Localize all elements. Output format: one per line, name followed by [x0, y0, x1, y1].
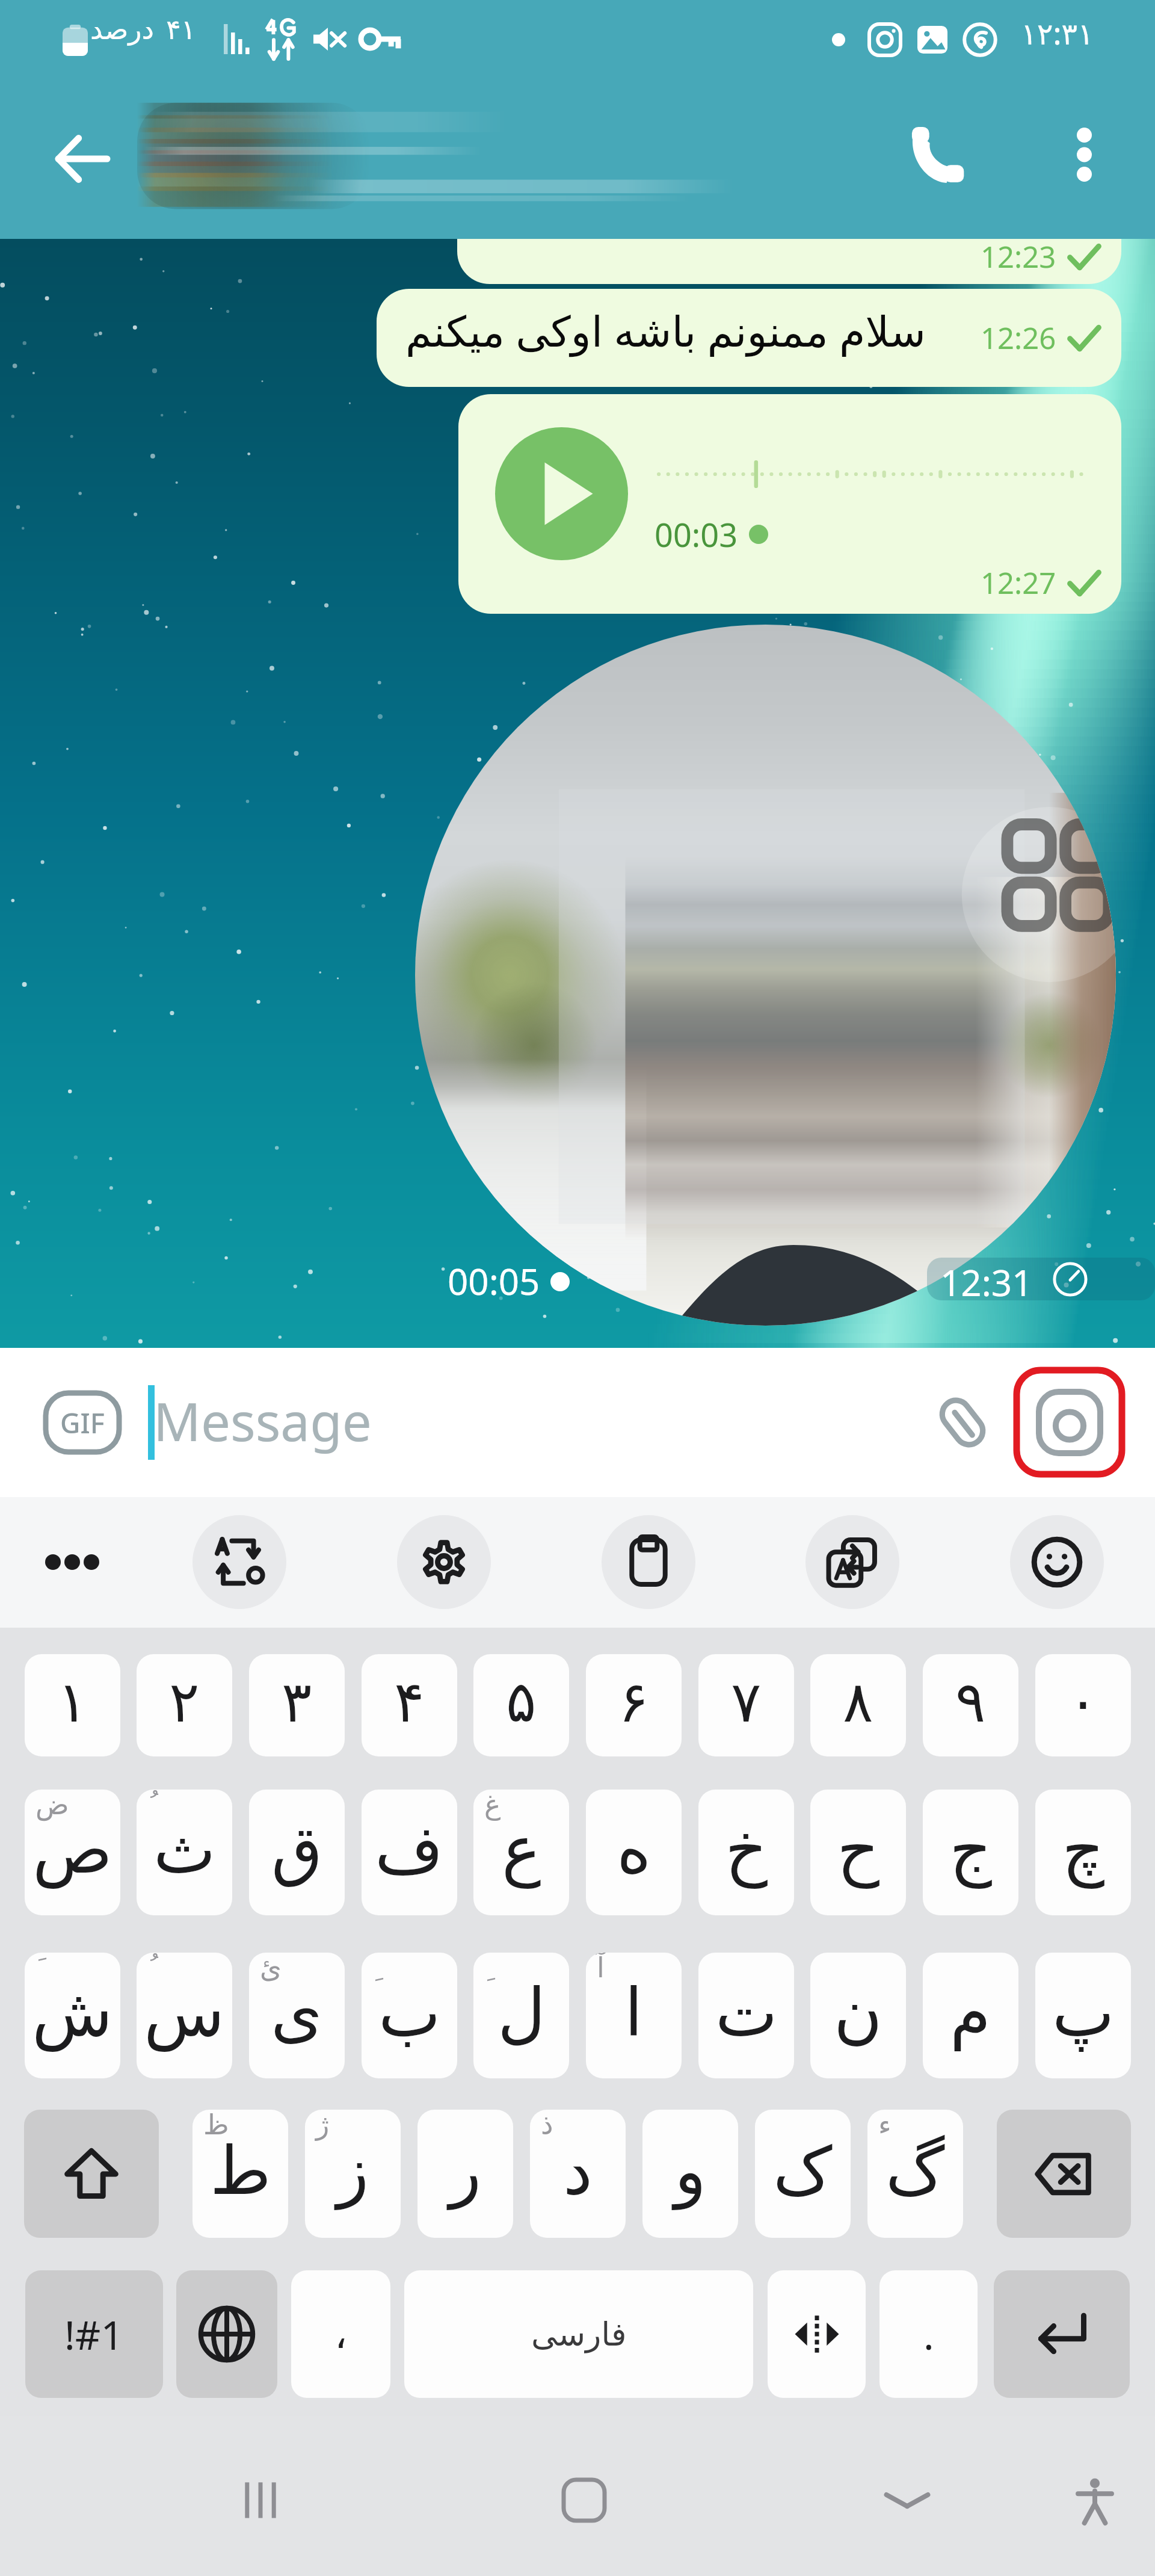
button[interactable]: ء — [867, 2110, 963, 2238]
staticText: سلام ممنونم باشه اوکی میکنم — [405, 301, 926, 359]
button[interactable]: ِ — [362, 1953, 457, 2078]
staticText: ۷ — [731, 1669, 762, 1735]
button[interactable]: Keyboard tool 3 — [602, 1515, 695, 1609]
staticText: ۱ — [57, 1669, 88, 1735]
button[interactable]: Back — [36, 114, 126, 204]
button[interactable]: 12:23 — [457, 181, 1121, 284]
button[interactable]: ۲ — [137, 1654, 232, 1756]
button[interactable]: Shift — [24, 2110, 159, 2238]
button[interactable]: Keyboard tool 4 — [805, 1515, 899, 1609]
staticText: ب — [378, 1974, 441, 2051]
button[interactable]: 12:26 — [377, 289, 1121, 387]
staticText: ئ — [260, 1953, 282, 1984]
staticText: ق — [271, 1811, 323, 1888]
button[interactable]: م — [923, 1953, 1018, 2078]
button[interactable]: Keyboard tool 2 — [397, 1515, 491, 1609]
button[interactable]: ظ — [192, 2110, 288, 2238]
button[interactable]: Play voice message — [495, 427, 628, 560]
staticText: ظ — [203, 2110, 229, 2141]
button[interactable]: و — [642, 2110, 738, 2238]
staticText: 12:31 — [940, 1258, 1033, 1307]
staticText: ت — [715, 1974, 778, 2051]
button[interactable]: ُ — [137, 1953, 232, 2078]
button[interactable]: ذ — [530, 2110, 626, 2238]
button[interactable]: Keyboard tool 1 — [192, 1515, 286, 1609]
button[interactable]: More options — [1039, 110, 1129, 200]
button[interactable]: ح — [810, 1790, 906, 1915]
staticText: ۳ — [282, 1669, 312, 1735]
staticText: غ — [484, 1790, 501, 1821]
button[interactable]: Change language — [176, 2270, 277, 2398]
button[interactable]: ج — [923, 1790, 1018, 1915]
button[interactable]: ه — [586, 1790, 682, 1915]
staticText: ع — [502, 1811, 541, 1888]
button[interactable]: Video message — [415, 625, 1116, 1326]
staticText: ۰ — [1068, 1669, 1098, 1735]
button[interactable]: ض — [25, 1790, 120, 1915]
staticText: ۴۱ — [166, 13, 196, 46]
staticText: و — [674, 2133, 707, 2210]
staticText: ۹ — [955, 1669, 986, 1735]
button[interactable]: ۵ — [473, 1654, 569, 1756]
button[interactable]: ت — [698, 1953, 794, 2078]
button[interactable]: آ — [586, 1953, 682, 2078]
button[interactable]: ئ — [249, 1953, 345, 2078]
staticText: درصد — [90, 13, 154, 46]
staticText: س — [144, 1974, 225, 2051]
button[interactable]: ژ — [305, 2110, 401, 2238]
staticText: ث — [153, 1811, 216, 1888]
button[interactable]: چ — [1035, 1790, 1131, 1915]
staticText: ۱۲:۳۱ — [1021, 13, 1094, 54]
button[interactable]: Move cursor — [768, 2270, 866, 2398]
staticText: چ — [1062, 1811, 1105, 1888]
button[interactable]: Home — [548, 2464, 620, 2536]
button[interactable]: !#1 — [25, 2270, 163, 2398]
staticText: ز — [337, 2133, 369, 2210]
button[interactable]: ۹ — [923, 1654, 1018, 1756]
staticText: فارسی — [531, 2315, 627, 2353]
button[interactable]: Attach — [926, 1386, 999, 1459]
button[interactable]: پ — [1035, 1953, 1131, 2078]
button[interactable]: GIF — [43, 1390, 122, 1455]
staticText: ر — [449, 2133, 482, 2210]
button[interactable]: Keyboard tool 5 — [1010, 1515, 1104, 1609]
button[interactable]: ۳ — [249, 1654, 345, 1756]
button[interactable]: ُ — [137, 1790, 232, 1915]
button[interactable]: Call — [895, 110, 985, 200]
button[interactable]: ق — [249, 1790, 345, 1915]
staticText: ، — [334, 2311, 348, 2358]
button[interactable]: ف — [362, 1790, 457, 1915]
button[interactable]: Play voice message — [458, 394, 1121, 614]
button[interactable]: خ — [698, 1790, 794, 1915]
staticText: 12:27 — [981, 563, 1056, 603]
button[interactable]: ۱ — [25, 1654, 120, 1756]
staticText: ۵ — [506, 1669, 537, 1735]
button[interactable]: ۷ — [698, 1654, 794, 1756]
button[interactable]: َ — [25, 1953, 120, 2078]
button[interactable]: ۰ — [1035, 1654, 1131, 1756]
button[interactable]: ، — [291, 2270, 390, 2398]
button[interactable]: Hide keyboard — [871, 2464, 943, 2536]
staticText: ۸ — [843, 1669, 873, 1735]
staticText: پ — [1052, 1974, 1115, 2051]
staticText: ء — [878, 2110, 892, 2141]
button[interactable]: ۸ — [810, 1654, 906, 1756]
button[interactable]: Enter — [994, 2270, 1130, 2398]
button[interactable]: ر — [417, 2110, 513, 2238]
button[interactable]: ک — [755, 2110, 851, 2238]
button[interactable]: Accessibility — [1059, 2464, 1131, 2536]
button[interactable]: . — [879, 2270, 978, 2398]
button[interactable]: ن — [810, 1953, 906, 2078]
button[interactable]: ۴ — [362, 1654, 457, 1756]
staticText: ه — [617, 1811, 651, 1888]
staticText: ص — [32, 1811, 112, 1888]
button[interactable]: فارسی — [404, 2270, 753, 2398]
button[interactable]: غ — [473, 1790, 569, 1915]
button[interactable]: Camera — [1014, 1367, 1125, 1477]
button[interactable]: Backspace — [997, 2110, 1131, 2238]
staticText: . — [923, 2307, 934, 2361]
button[interactable]: Recents — [224, 2464, 297, 2536]
staticText: خ — [725, 1811, 768, 1888]
button[interactable]: ِ — [473, 1953, 569, 2078]
button[interactable]: ۶ — [586, 1654, 682, 1756]
